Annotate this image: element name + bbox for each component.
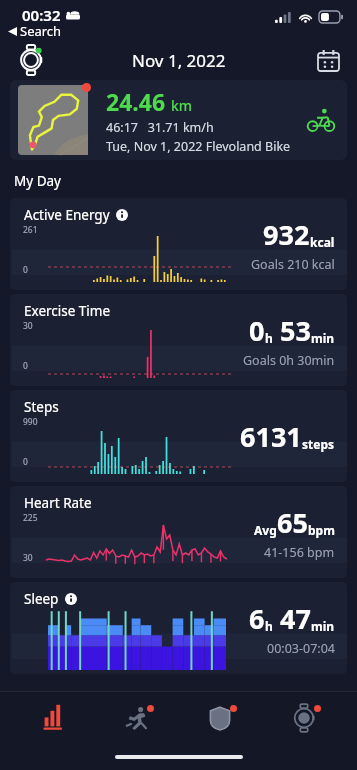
staticText: 65 xyxy=(277,504,308,541)
staticText: 00:03-07:04 xyxy=(267,640,335,657)
button[interactable]: Calendar xyxy=(311,43,345,77)
staticText: 47 xyxy=(273,600,311,637)
staticText: 00:32 xyxy=(22,5,61,25)
staticText: 6 xyxy=(249,600,265,637)
staticText: Heart Rate xyxy=(24,494,92,512)
button[interactable]: Safety xyxy=(189,692,251,744)
staticText: steps xyxy=(302,436,335,452)
button[interactable]: Steps xyxy=(10,390,347,482)
staticText: Goals 0h 30min xyxy=(243,352,335,369)
button[interactable]: Watch status xyxy=(12,41,50,79)
staticText: Sleep xyxy=(24,590,59,608)
staticText: 0 xyxy=(23,264,28,276)
staticText: Nov 1, 2022 xyxy=(132,49,226,72)
staticText: Search xyxy=(20,22,62,40)
button[interactable]: Exercise Time xyxy=(10,294,347,386)
staticText: h xyxy=(265,618,273,634)
staticText: 0 xyxy=(23,360,28,372)
staticText: 0 xyxy=(249,312,265,349)
button[interactable]: Heart Rate xyxy=(10,486,347,578)
staticText: Steps xyxy=(24,398,59,416)
staticText: 24.46 xyxy=(106,86,166,117)
staticText: 990 xyxy=(23,416,38,428)
staticText: Active Energy xyxy=(24,206,110,224)
button[interactable]: Sleep xyxy=(10,582,347,674)
staticText: 6131 xyxy=(240,418,302,455)
staticText: kcal xyxy=(310,234,335,250)
button[interactable]: Statistics xyxy=(22,692,84,744)
staticText: min xyxy=(311,330,335,346)
staticText: 0 xyxy=(23,456,28,468)
staticText: 46:17 31.71 km/h xyxy=(106,119,214,136)
staticText: 30 xyxy=(23,552,33,564)
staticText: 261 xyxy=(23,224,38,236)
staticText: Avg xyxy=(254,522,277,538)
staticText: h xyxy=(265,330,273,346)
staticText: 41-156 bpm xyxy=(264,544,335,561)
button[interactable]: Workout xyxy=(106,692,168,744)
staticText: 225 xyxy=(23,512,38,524)
staticText: km xyxy=(171,96,193,115)
staticText: min xyxy=(311,618,335,634)
staticText: 30 xyxy=(23,320,33,332)
staticText: Goals 210 kcal xyxy=(251,256,335,273)
staticText: Exercise Time xyxy=(24,302,111,320)
button[interactable]: Active Energy xyxy=(10,198,347,290)
staticText: 53 xyxy=(273,312,311,349)
button[interactable]: 24.46 xyxy=(10,80,347,160)
button[interactable]: Device xyxy=(273,692,335,744)
staticText: bpm xyxy=(308,522,335,538)
staticText: Tue, Nov 1, 2022 Flevoland Bike xyxy=(106,138,291,155)
staticText: 932 xyxy=(263,216,310,253)
staticText: My Day xyxy=(14,172,61,190)
